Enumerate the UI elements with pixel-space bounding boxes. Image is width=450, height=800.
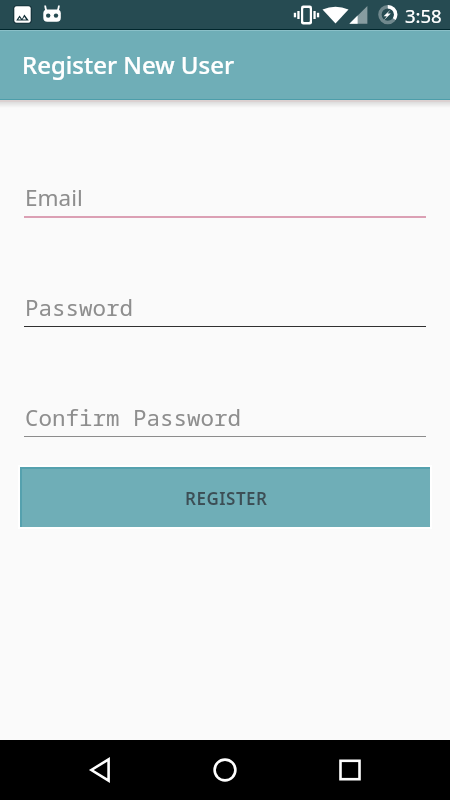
button[interactable]: Confirm Password bbox=[24, 386, 426, 445]
staticText: Register New User bbox=[22, 48, 235, 81]
button[interactable]: Recent apps bbox=[310, 740, 390, 800]
staticText: 3:58 bbox=[405, 3, 442, 28]
button[interactable]: Password bbox=[24, 276, 426, 335]
staticText: REGISTER bbox=[185, 487, 268, 510]
button[interactable]: Home bbox=[185, 740, 265, 800]
button[interactable]: Email bbox=[24, 166, 426, 226]
staticText: Confirm Password bbox=[25, 402, 242, 433]
staticText: Email bbox=[25, 182, 83, 213]
button[interactable]: REGISTER bbox=[20, 467, 430, 527]
staticText: Password bbox=[25, 292, 134, 323]
button[interactable]: Back bbox=[60, 740, 140, 800]
